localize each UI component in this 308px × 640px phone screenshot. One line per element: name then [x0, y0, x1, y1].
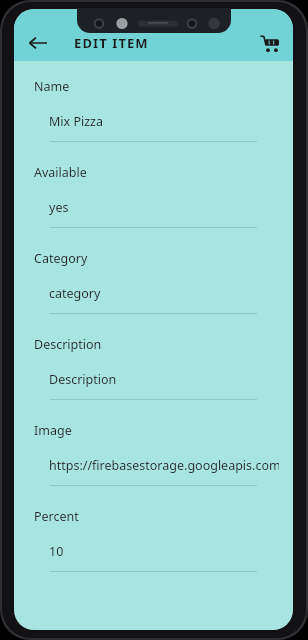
staticText: https://firebasestorage.googleapis.com/x	[49, 457, 279, 474]
staticText: Image	[34, 422, 72, 439]
button[interactable]: Back	[18, 23, 58, 63]
staticText: Description	[49, 371, 117, 388]
staticText: Available	[34, 164, 87, 181]
button[interactable]: Cart	[249, 23, 289, 63]
button[interactable]: Percent	[14, 508, 293, 594]
staticText: yes	[49, 199, 69, 216]
staticText: Description	[34, 336, 102, 353]
staticText: Name	[34, 78, 70, 95]
staticText: Percent	[34, 508, 79, 525]
button[interactable]: Available	[14, 164, 293, 250]
staticText: 10	[49, 543, 64, 560]
button[interactable]: Image	[14, 422, 293, 508]
staticText: category	[49, 285, 101, 302]
button[interactable]: Description	[14, 336, 293, 422]
button[interactable]: Category	[14, 250, 293, 336]
staticText: Mix Pizza	[49, 113, 103, 130]
button[interactable]: Name	[14, 78, 293, 164]
staticText: Category	[34, 250, 88, 267]
staticText: EDIT ITEM	[74, 34, 149, 52]
